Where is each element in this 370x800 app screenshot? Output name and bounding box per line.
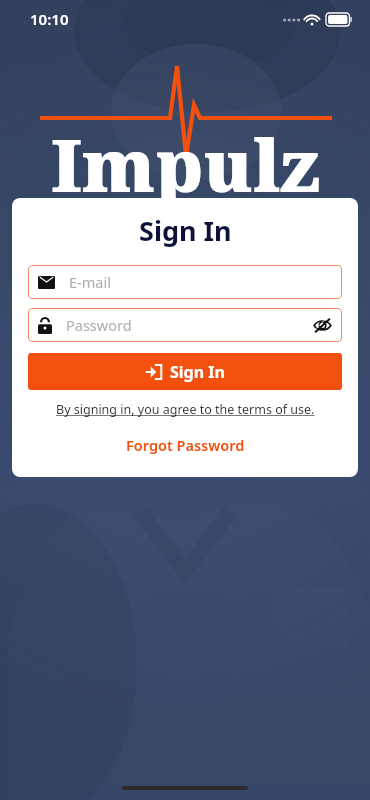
staticText: By signing in, you agree to the terms of… [56,401,315,418]
button[interactable]: By signing in, you agree to the terms of… [56,401,315,418]
button[interactable]: Show password [313,318,332,333]
staticText: Forgot Password [126,435,245,455]
staticText: Impulz [51,115,320,213]
staticText: 10:10 [30,9,69,29]
button[interactable]: Password [28,308,342,342]
staticText: Password [66,315,132,335]
staticText: Sign In [170,361,225,383]
button[interactable]: Sign In [28,353,342,390]
button[interactable]: E-mail [28,265,342,299]
staticText: Sign In [139,212,232,249]
button[interactable]: Forgot Password [120,433,251,457]
staticText: E-mail [69,272,111,292]
